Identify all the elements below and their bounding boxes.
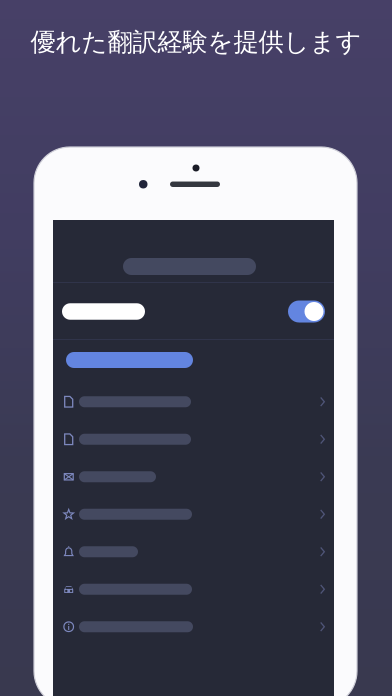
button[interactable] bbox=[53, 383, 334, 420]
button[interactable] bbox=[53, 458, 334, 495]
button[interactable] bbox=[53, 495, 334, 533]
button[interactable] bbox=[53, 608, 334, 645]
button[interactable] bbox=[53, 533, 334, 570]
button[interactable] bbox=[53, 570, 334, 608]
button[interactable] bbox=[53, 420, 334, 458]
staticText: 優れた翻訳経験を提供します bbox=[30, 26, 361, 57]
button[interactable] bbox=[53, 283, 334, 340]
